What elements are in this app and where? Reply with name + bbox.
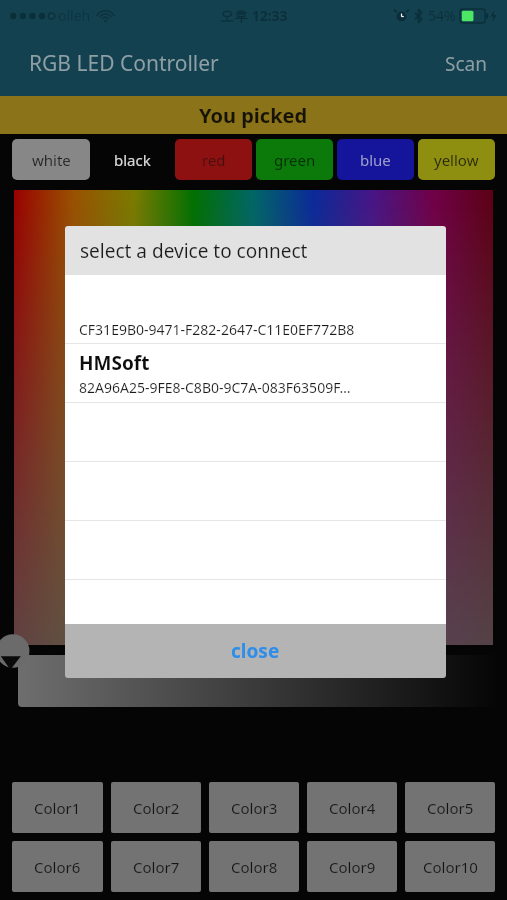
button[interactable]: CF31E9B0-9471-F282-2647-C11E0EF772B8 [65, 315, 446, 343]
button[interactable]: Color4 [307, 782, 397, 833]
staticText: select a device to connect [80, 238, 308, 264]
staticText: Color5 [427, 798, 474, 818]
staticText: close [231, 638, 280, 664]
staticText: Color3 [231, 798, 278, 818]
staticText: RGB LED Controller [29, 49, 219, 78]
button[interactable]: black [94, 139, 171, 180]
staticText: Color4 [329, 798, 376, 818]
button[interactable]: HMSoft [65, 344, 446, 402]
button[interactable]: Color5 [405, 782, 495, 833]
button[interactable]: blue [337, 139, 414, 180]
button[interactable]: Color2 [111, 782, 201, 833]
staticText: You picked [199, 102, 308, 129]
staticText: blue [360, 150, 391, 170]
staticText: yellow [434, 150, 479, 170]
button[interactable]: red [175, 139, 252, 180]
button[interactable]: yellow [418, 139, 495, 180]
staticText: white [32, 150, 71, 170]
button[interactable]: Color9 [307, 841, 397, 892]
staticText: Color6 [34, 857, 81, 877]
staticText: Color8 [231, 857, 278, 877]
staticText: black [114, 150, 151, 170]
staticText: Color1 [34, 798, 81, 818]
button[interactable]: Color6 [12, 841, 103, 892]
staticText: 82A96A25-9FE8-C8B0-9C7A-083F63509F… [79, 378, 351, 397]
staticText: Color2 [133, 798, 180, 818]
staticText: 오후 12:33 [220, 6, 288, 25]
button[interactable]: Color1 [12, 782, 103, 833]
staticText: Color10 [423, 857, 478, 877]
staticText: 54% [428, 6, 456, 25]
button[interactable]: green [256, 139, 333, 180]
staticText: Color9 [329, 857, 376, 877]
button[interactable]: Color10 [405, 841, 495, 892]
other: Brightness slider thumb [0, 633, 36, 673]
staticText: CF31E9B0-9471-F282-2647-C11E0EF772B8 [79, 320, 355, 339]
button[interactable]: Color3 [209, 782, 299, 833]
button[interactable]: Scan [425, 41, 507, 87]
button[interactable] [18, 655, 499, 707]
staticText: Scan [445, 51, 487, 77]
staticText: olleh [58, 6, 91, 25]
button[interactable]: Color7 [111, 841, 201, 892]
button[interactable]: Color8 [209, 841, 299, 892]
staticText: green [274, 150, 316, 170]
button[interactable]: close [65, 624, 446, 678]
staticText: Color7 [133, 857, 180, 877]
staticText: HMSoft [79, 350, 150, 376]
staticText: red [202, 150, 226, 170]
button[interactable]: white [12, 139, 90, 180]
